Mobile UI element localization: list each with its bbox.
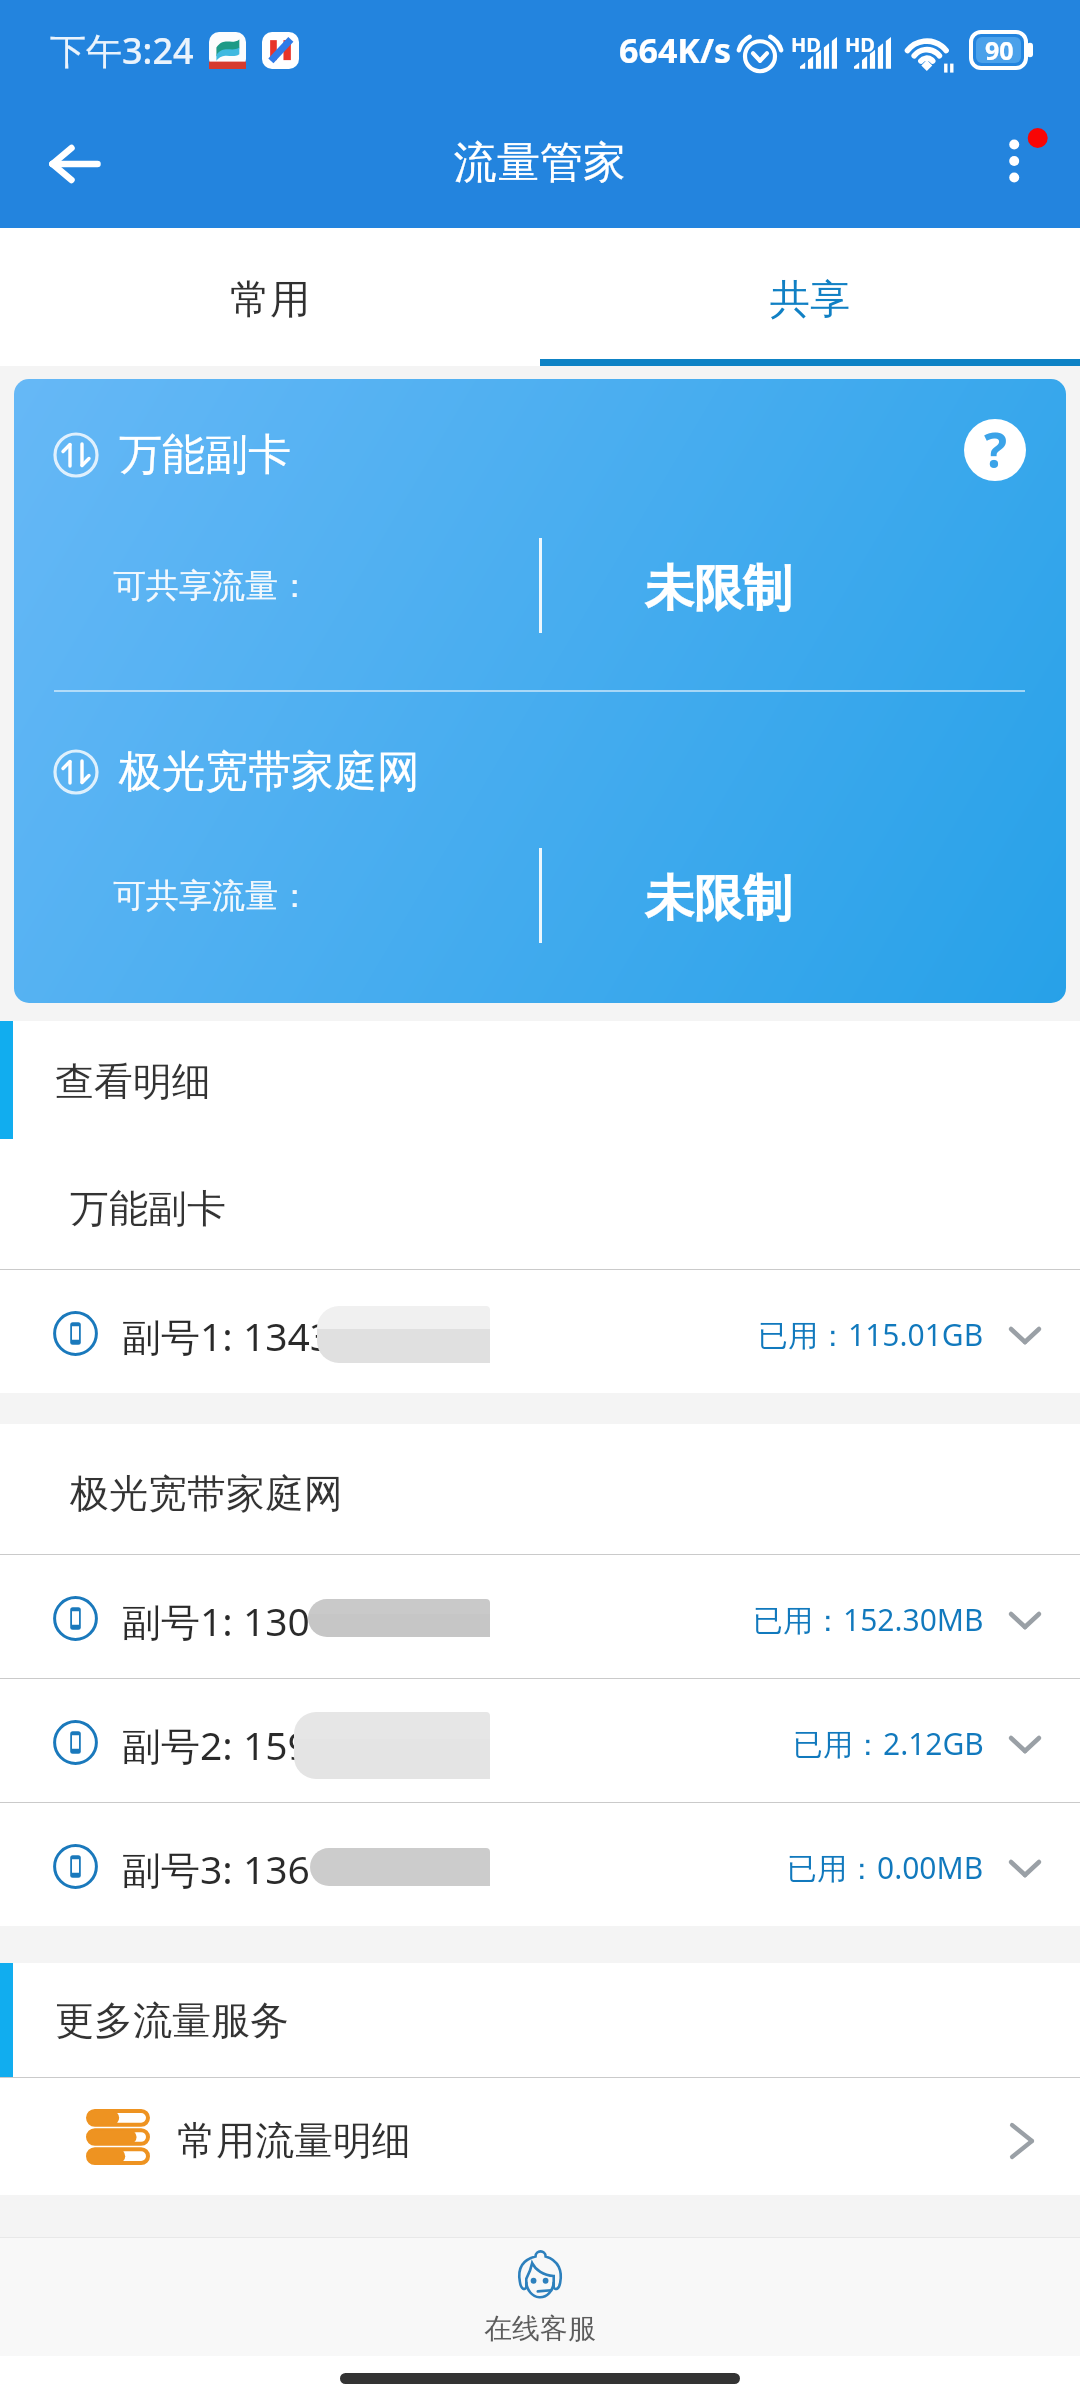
staticText: 极光宽带家庭网 bbox=[119, 745, 420, 799]
button[interactable]: 常用流量明细 bbox=[0, 2078, 1080, 2195]
staticText: HD bbox=[791, 31, 821, 58]
staticText: 664K/s bbox=[619, 27, 732, 73]
button[interactable]: Help bbox=[964, 419, 1026, 481]
staticText: 下午3:24 bbox=[50, 26, 194, 75]
staticText: 已用：2.12GB bbox=[793, 1723, 984, 1764]
staticText: 万能副卡 bbox=[119, 428, 291, 482]
staticText: 流量管家 bbox=[454, 136, 626, 190]
staticText: 可共享流量： bbox=[113, 565, 311, 607]
staticText: 查看明细 bbox=[55, 1057, 211, 1106]
staticText: 未限制 bbox=[645, 868, 792, 930]
staticText: 万能副卡 bbox=[70, 1184, 226, 1233]
staticText: 副号2: 159 bbox=[122, 1718, 310, 1771]
button[interactable]: 查看明细 bbox=[0, 1021, 1080, 1139]
button[interactable]: 常用 bbox=[0, 228, 540, 366]
staticText: 可共享流量： bbox=[113, 875, 311, 917]
staticText: 已用：0.00MB bbox=[787, 1847, 984, 1888]
staticText: 副号1: 130 bbox=[122, 1594, 310, 1647]
staticText: 已用：152.30MB bbox=[753, 1599, 984, 1640]
staticText: 已用：115.01GB bbox=[758, 1314, 984, 1355]
staticText: 副号3: 136 bbox=[122, 1842, 310, 1895]
button[interactable]: 副号1: 130 bbox=[0, 1555, 1080, 1678]
staticText: 共享 bbox=[770, 274, 850, 324]
button[interactable]: 副号1: 1343 bbox=[0, 1270, 1080, 1393]
button[interactable]: 副号2: 159 bbox=[0, 1679, 1080, 1802]
staticText: 未限制 bbox=[645, 558, 792, 620]
staticText: 90 bbox=[985, 33, 1014, 67]
button[interactable]: 在线客服 bbox=[0, 2238, 1080, 2356]
button[interactable]: 共享 bbox=[540, 228, 1080, 366]
button[interactable]: Back bbox=[0, 100, 128, 228]
staticText: 常用流量明细 bbox=[177, 2116, 411, 2165]
staticText: HD bbox=[845, 31, 875, 58]
button[interactable]: More options bbox=[952, 100, 1080, 228]
staticText: 副号1: 1343 bbox=[122, 1309, 333, 1362]
staticText: 在线客服 bbox=[484, 2311, 596, 2346]
button[interactable]: 副号3: 136 bbox=[0, 1803, 1080, 1926]
staticText: 极光宽带家庭网 bbox=[70, 1469, 343, 1518]
staticText: ? bbox=[984, 419, 1007, 479]
staticText: 常用 bbox=[230, 274, 310, 324]
staticText: 更多流量服务 bbox=[55, 1996, 289, 2045]
